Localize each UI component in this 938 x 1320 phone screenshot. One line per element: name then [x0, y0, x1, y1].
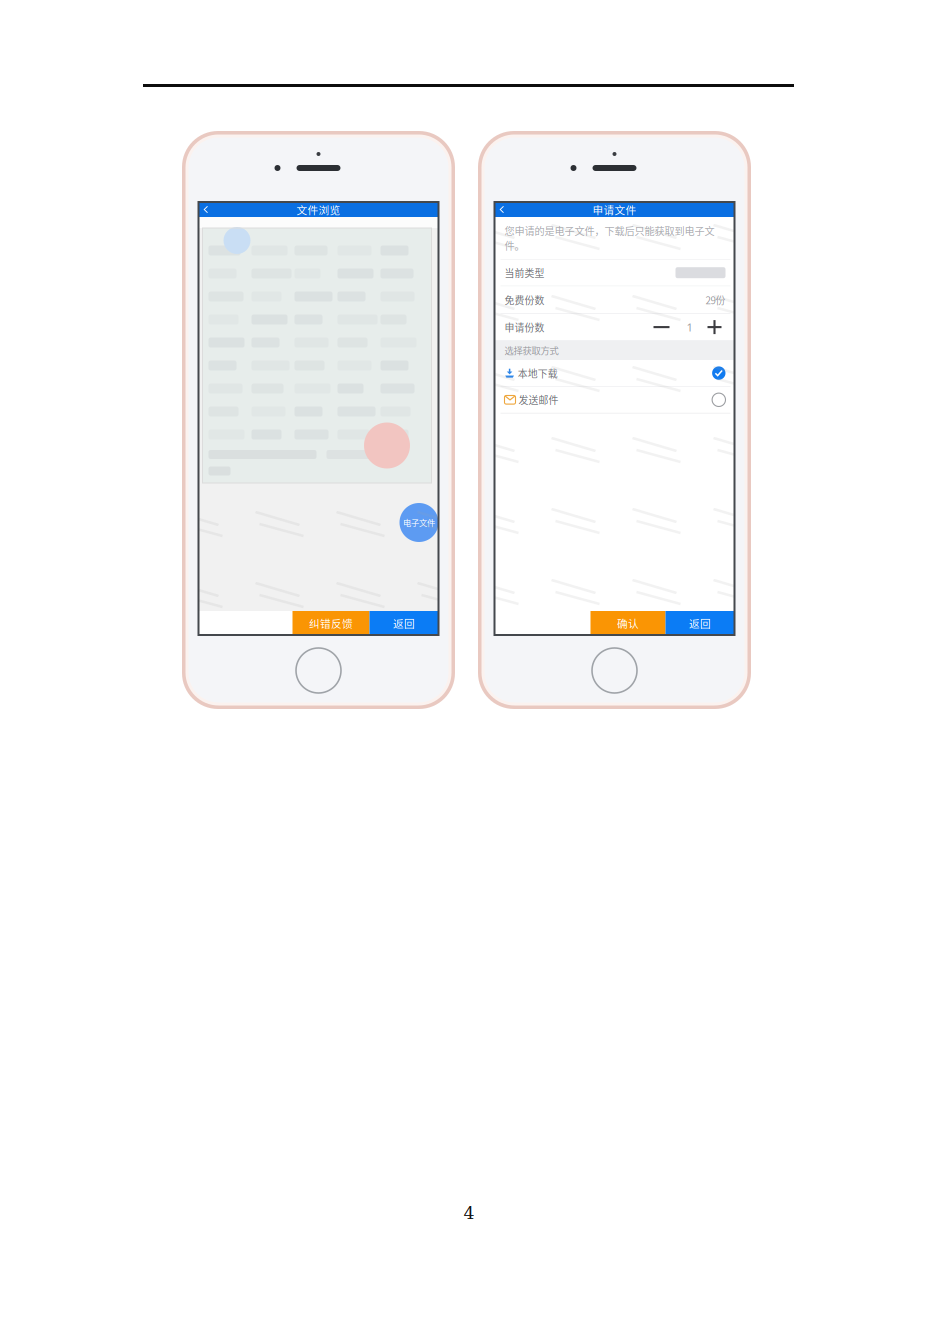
button[interactable]: 确认 — [590, 611, 665, 635]
button[interactable]: 纠错反馈 — [292, 611, 369, 635]
staticText: 申请文件 — [592, 202, 636, 217]
staticText: 电子文件 — [403, 516, 435, 528]
staticText: 4 — [463, 1203, 474, 1223]
staticText: 免费份数 — [504, 293, 544, 307]
staticText: 29份 — [705, 293, 725, 307]
button[interactable]: 减少 — [647, 316, 675, 338]
button[interactable]: 返回 — [494, 202, 509, 217]
staticText: 文件浏览 — [296, 202, 340, 217]
button[interactable]: 发送邮件 — [494, 387, 734, 413]
staticText: 本地下载 — [518, 366, 558, 380]
staticText: 纠错反馈 — [309, 615, 353, 631]
button[interactable]: 电子文件 — [392, 503, 445, 542]
button[interactable]: 返回 — [198, 202, 213, 217]
staticText: 发送邮件 — [518, 393, 558, 407]
button[interactable]: 返回 — [665, 611, 734, 635]
button[interactable]: 增加 — [703, 316, 725, 338]
button[interactable]: 本地下载 — [494, 360, 734, 386]
staticText: 当前类型 — [504, 266, 544, 280]
staticText: 返回 — [393, 615, 415, 631]
button[interactable]: 返回 — [369, 611, 438, 635]
staticText: 确认 — [617, 615, 639, 631]
staticText: 选择获取方式 — [504, 343, 558, 357]
staticText: 1 — [686, 319, 692, 335]
staticText: 您申请的是电子文件，下载后只能获取到电子文件。 — [504, 223, 714, 253]
staticText: 返回 — [689, 615, 711, 631]
staticText: 申请份数 — [504, 320, 544, 334]
